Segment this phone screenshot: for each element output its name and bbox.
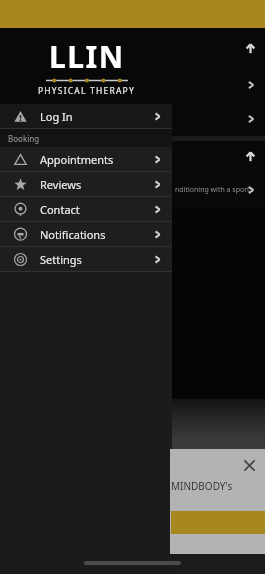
staticText: Reviews bbox=[40, 177, 82, 192]
button[interactable]: Notifications bbox=[0, 222, 172, 246]
button[interactable]: Collapse bbox=[244, 42, 257, 55]
staticText: Log In bbox=[40, 109, 73, 124]
staticText: Settings bbox=[40, 252, 82, 267]
staticText: Appointments bbox=[40, 152, 114, 167]
button[interactable] bbox=[0, 68, 265, 102]
button[interactable]: Contact bbox=[0, 197, 172, 221]
button[interactable] bbox=[0, 102, 265, 136]
button[interactable]: Collapse bbox=[244, 150, 257, 163]
button[interactable]: Collapse bbox=[0, 28, 265, 68]
staticText: Notifications bbox=[40, 227, 106, 242]
button[interactable]: Reviews bbox=[0, 172, 172, 196]
button[interactable]: Close bbox=[241, 457, 258, 474]
staticText: nditioning with a sports bbox=[175, 185, 253, 195]
button[interactable]: Log In bbox=[0, 104, 172, 128]
button[interactable]: Settings bbox=[0, 247, 172, 271]
button[interactable]: nditioning with a sports bbox=[0, 171, 265, 209]
staticText: MINDBODY's bbox=[171, 479, 233, 493]
staticText: PHYSICAL THERAPY bbox=[38, 85, 135, 97]
staticText: LLIN bbox=[49, 36, 125, 77]
staticText: Booking bbox=[8, 133, 40, 144]
button[interactable]: Collapse bbox=[0, 141, 265, 171]
button[interactable]: Appointments bbox=[0, 147, 172, 171]
staticText: Contact bbox=[40, 202, 80, 217]
